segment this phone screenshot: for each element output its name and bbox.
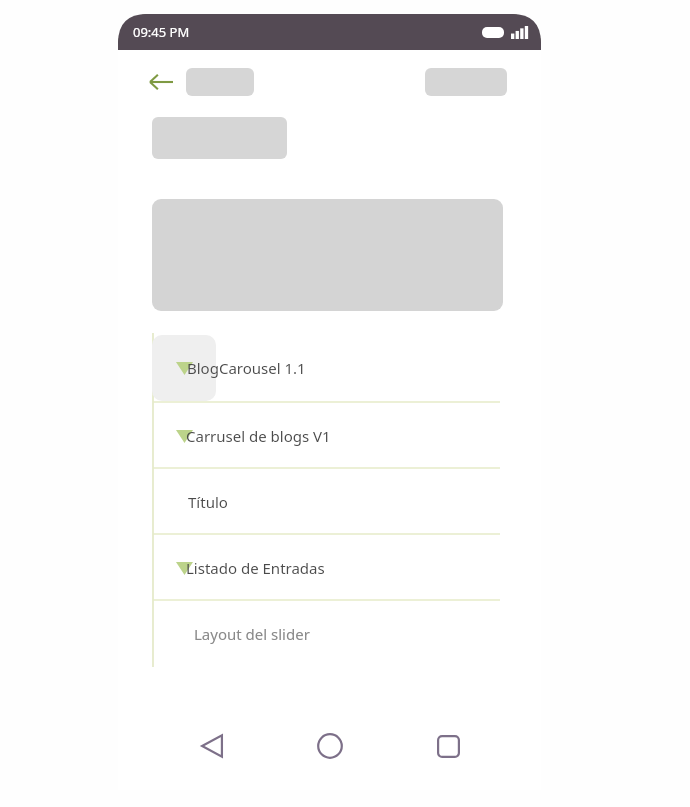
staticText: Carrusel de blogs V1 (186, 426, 331, 446)
button[interactable] (186, 68, 254, 96)
button[interactable]: Back (185, 720, 237, 772)
staticText: 09:45 PM (133, 23, 190, 41)
button[interactable]: Recent apps (422, 720, 474, 772)
button[interactable]: Listado de Entradas (118, 535, 541, 601)
staticText: Título (188, 492, 228, 512)
button[interactable]: Back (145, 66, 177, 98)
button[interactable]: Título (118, 469, 541, 535)
staticText: Listado de Entradas (186, 558, 325, 578)
button[interactable]: BlogCarousel 1.1 (118, 333, 541, 403)
staticText: Layout del slider (194, 624, 310, 644)
button[interactable]: Home (304, 720, 356, 772)
button[interactable]: Carrusel de blogs V1 (118, 403, 541, 469)
button[interactable] (425, 68, 507, 96)
button[interactable]: Layout del slider (118, 601, 541, 667)
staticText: BlogCarousel 1.1 (187, 358, 306, 378)
